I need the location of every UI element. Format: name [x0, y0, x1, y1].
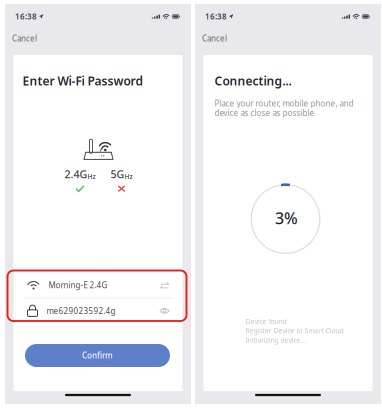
- button[interactable]: me629023592.4g: [13, 298, 182, 323]
- staticText: 5G: [110, 167, 124, 181]
- staticText: Morning-E 2.4G: [48, 280, 107, 290]
- staticText: Initializing device...: [245, 336, 306, 345]
- staticText: Connecting...: [214, 73, 291, 89]
- staticText: Confirm: [82, 350, 113, 361]
- staticText: Place your router, mobile phone, and: [214, 98, 353, 109]
- staticText: Device found: [245, 317, 286, 326]
- staticText: 2.4G: [64, 167, 87, 181]
- staticText: 16:38: [15, 11, 37, 22]
- staticText: Hz: [124, 172, 132, 181]
- button[interactable]: Confirm: [25, 344, 170, 367]
- staticText: device as close as possible: [214, 108, 314, 118]
- button[interactable]: Morning-E 2.4G: [13, 273, 182, 298]
- staticText: Cancel: [12, 33, 37, 44]
- button[interactable]: Cancel: [195, 29, 235, 48]
- staticText: 3%: [275, 207, 298, 229]
- staticText: me629023592.4g: [46, 305, 115, 316]
- staticText: 16:38: [205, 11, 227, 22]
- staticText: Hz: [87, 172, 95, 181]
- button[interactable]: Cancel: [5, 29, 45, 48]
- staticText: Enter Wi-Fi Password: [22, 73, 143, 89]
- staticText: Register Device to Smart Cloud: [245, 326, 343, 335]
- staticText: Cancel: [202, 33, 227, 44]
